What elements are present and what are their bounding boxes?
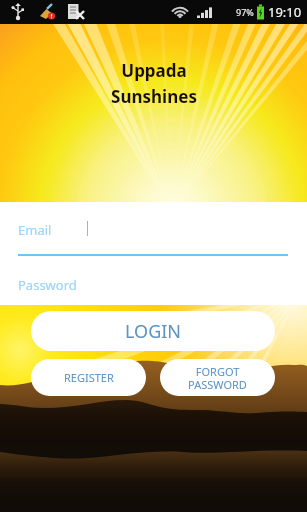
staticText: 19:10 (268, 3, 302, 21)
staticText: REGISTER (64, 370, 114, 385)
staticText: 97% (236, 6, 254, 18)
staticText: LOGIN (125, 319, 182, 344)
staticText: Password (18, 276, 77, 294)
button[interactable]: FORGOT PASSWORD (160, 359, 275, 396)
staticText: Email (18, 221, 52, 239)
button[interactable]: REGISTER (31, 359, 146, 396)
staticText: Uppada Sunshines (111, 59, 197, 108)
staticText: FORGOT PASSWORD (188, 364, 247, 392)
button[interactable]: LOGIN (31, 311, 275, 351)
